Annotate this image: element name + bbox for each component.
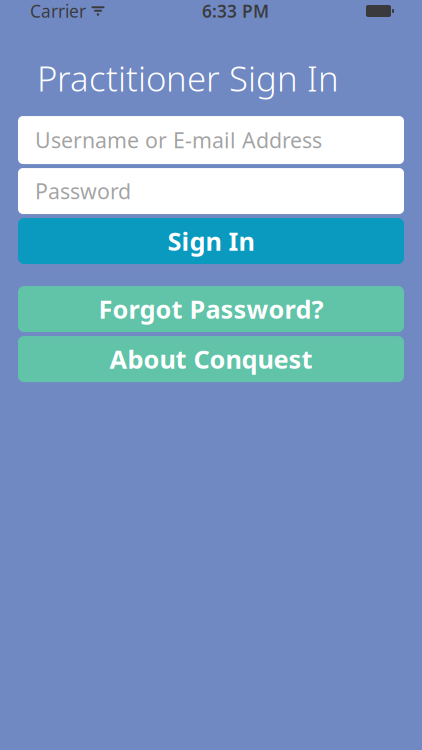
button[interactable]: Forgot Password? (18, 286, 404, 332)
staticText: Practitioner Sign In (37, 55, 339, 101)
staticText: Carrier (30, 0, 86, 22)
button[interactable]: Sign In (18, 218, 404, 264)
staticText: 6:33 PM (202, 0, 269, 22)
staticText: Password (35, 177, 131, 205)
button[interactable]: About Conquest (18, 336, 404, 382)
staticText: About Conquest (109, 342, 312, 376)
staticText: Sign In (167, 224, 254, 258)
staticText: Username or E-mail Address (35, 126, 322, 154)
staticText: Forgot Password? (98, 292, 323, 326)
